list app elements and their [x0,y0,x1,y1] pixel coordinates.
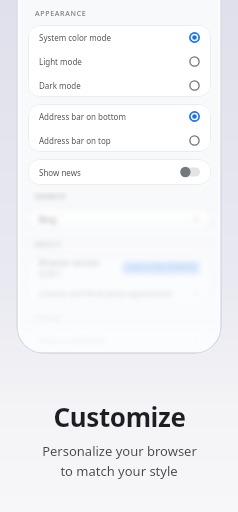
button[interactable]: Address bar on top [28,128,211,152]
staticText: Address bar on bottom [39,111,189,122]
staticText: CHECK FOR UPDATES [126,263,196,273]
staticText: Address bar on top [39,135,189,146]
staticText: System color mode [39,32,189,43]
staticText: Light mode [39,56,189,67]
staticText: APPEARANCE [35,9,87,19]
staticText: Bing [39,214,192,225]
staticText: Customize [53,399,186,434]
button[interactable]: Show news [28,159,211,185]
staticText: Show news [39,167,180,178]
button[interactable]: Dark mode [28,73,211,97]
other: Show news, off [180,166,200,178]
button[interactable]: Bing [28,207,211,231]
staticText: SEARCH [35,192,66,202]
button[interactable]: Light mode [28,49,211,73]
staticText: Personalize your browser [42,442,197,460]
staticText: ABOUT [35,240,63,250]
button[interactable]: License and third party agreements [28,281,211,305]
button[interactable]: Address bar on bottom [28,104,211,128]
button[interactable]: Browser version 4.20.1 [28,255,211,281]
staticText: License and third party agreements [39,288,192,299]
button[interactable]: System color mode [28,25,211,49]
staticText: Dark mode [39,80,189,91]
staticText: Browser version 4.20.1 [39,257,122,279]
staticText: to match your style [60,462,178,480]
